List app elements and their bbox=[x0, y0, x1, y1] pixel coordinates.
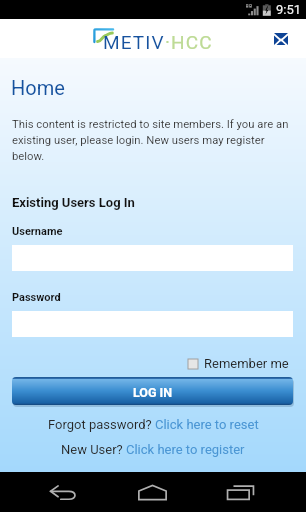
staticText: Existing Users Log In bbox=[12, 195, 135, 210]
staticText: 9:51 bbox=[276, 2, 302, 17]
button[interactable]: Click here to register bbox=[126, 442, 245, 457]
button[interactable]: Click here to reset bbox=[155, 417, 259, 432]
staticText: Password bbox=[12, 291, 61, 304]
button[interactable]: Back bbox=[40, 482, 87, 502]
staticText: LOG IN bbox=[133, 385, 173, 400]
staticText: Forgot password? bbox=[48, 417, 155, 432]
button[interactable]: Recent apps bbox=[217, 482, 264, 502]
staticText: METIV bbox=[103, 31, 165, 53]
button[interactable]: Remember me bbox=[188, 356, 289, 371]
button[interactable]: Messages bbox=[269, 27, 293, 51]
staticText: Home bbox=[11, 76, 65, 99]
button[interactable]: Home bbox=[129, 482, 176, 502]
button[interactable]: LOG IN bbox=[12, 377, 293, 405]
staticText: New User? bbox=[61, 442, 126, 457]
staticText: Remember me bbox=[204, 356, 289, 371]
staticText: This content is restricted to site membe… bbox=[12, 118, 289, 163]
staticText: Username bbox=[12, 225, 63, 238]
staticText: ·HCC bbox=[165, 31, 213, 53]
